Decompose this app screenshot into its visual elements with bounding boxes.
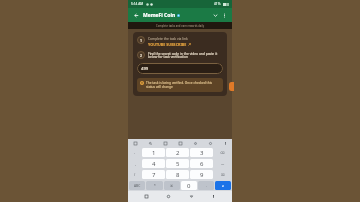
button[interactable]: Expand bbox=[210, 10, 220, 20]
staticText: Complete the task via link bbox=[148, 36, 188, 40]
staticText: Complete tasks and earn rewards daily bbox=[156, 24, 205, 28]
button[interactable]: ⌧ bbox=[214, 170, 231, 179]
staticText: ↵ bbox=[222, 184, 225, 188]
staticText: 4 bbox=[152, 160, 156, 168]
staticText: 9 bbox=[200, 171, 204, 179]
staticText: . bbox=[206, 184, 207, 188]
staticText: 1 bbox=[140, 38, 142, 43]
button[interactable]: 7 bbox=[142, 170, 165, 179]
button[interactable]: / bbox=[129, 170, 141, 179]
staticText: 6 bbox=[200, 160, 204, 168]
staticText: MemeFi Coin bbox=[143, 12, 176, 19]
button[interactable]: Keyboard bbox=[209, 192, 218, 201]
staticText: , bbox=[135, 162, 136, 166]
button[interactable]: Sticker bbox=[207, 140, 213, 146]
staticText: The task is being verified. Once checked… bbox=[146, 81, 220, 89]
staticText: 5 bbox=[176, 160, 180, 168]
staticText: 1 bbox=[152, 149, 156, 157]
button[interactable]: Search bbox=[147, 140, 153, 146]
button[interactable]: 1 bbox=[142, 148, 165, 157]
button[interactable]: Settings bbox=[192, 140, 198, 146]
button[interactable]: Recents bbox=[142, 192, 151, 201]
button[interactable]: Voice bbox=[222, 140, 228, 146]
button[interactable]: * bbox=[146, 181, 163, 190]
staticText: Find the secret code in the video and pa… bbox=[148, 51, 223, 59]
staticText: ABC bbox=[134, 184, 141, 188]
button[interactable]: 5 bbox=[166, 159, 189, 168]
staticText: — bbox=[221, 162, 225, 166]
button[interactable]: GIF bbox=[162, 140, 168, 146]
button[interactable]: Back bbox=[131, 10, 141, 20]
button[interactable]: ⌫ bbox=[214, 148, 231, 157]
staticText: 2 bbox=[176, 149, 180, 157]
button[interactable]: Back bbox=[187, 192, 196, 201]
staticText: / bbox=[134, 173, 136, 177]
staticText: 7 bbox=[152, 171, 156, 179]
staticText: ⌘ bbox=[170, 184, 174, 188]
button[interactable]: 2 bbox=[166, 148, 189, 157]
button[interactable]: 499 bbox=[137, 63, 223, 74]
button[interactable]: Keyboard bbox=[132, 140, 138, 146]
button[interactable]: ABC bbox=[129, 181, 145, 190]
button[interactable]: Clipboard bbox=[177, 140, 183, 146]
button[interactable]: — bbox=[214, 159, 231, 168]
button[interactable]: 4 bbox=[142, 159, 165, 168]
staticText: - bbox=[134, 151, 136, 155]
staticText: 8 bbox=[176, 171, 180, 179]
button[interactable]: 9 bbox=[190, 170, 213, 179]
button[interactable]: , bbox=[129, 159, 141, 168]
staticText: YOUTUBE SUBSCRIBE bbox=[148, 42, 187, 47]
button[interactable]: More options bbox=[220, 11, 229, 20]
staticText: 2 bbox=[140, 53, 142, 58]
staticText: ⌫ bbox=[220, 151, 225, 155]
staticText: 5:14 AM bbox=[131, 2, 144, 6]
staticText: * bbox=[154, 184, 156, 188]
button[interactable]: 8 bbox=[166, 170, 189, 179]
button[interactable]: ⌘ bbox=[164, 181, 180, 190]
button[interactable]: ↵ bbox=[215, 181, 231, 190]
button[interactable]: 6 bbox=[190, 159, 213, 168]
button[interactable]: 0 bbox=[181, 181, 197, 190]
staticText: 3 bbox=[200, 149, 204, 157]
staticText: 41% bbox=[214, 2, 221, 6]
button[interactable]: 3 bbox=[190, 148, 213, 157]
button[interactable]: YOUTUBE SUBSCRIBE bbox=[148, 42, 191, 47]
staticText: ⌧ bbox=[221, 173, 225, 177]
staticText: 499 bbox=[141, 66, 149, 72]
staticText: 0 bbox=[187, 182, 191, 190]
button[interactable]: Home bbox=[164, 192, 173, 201]
